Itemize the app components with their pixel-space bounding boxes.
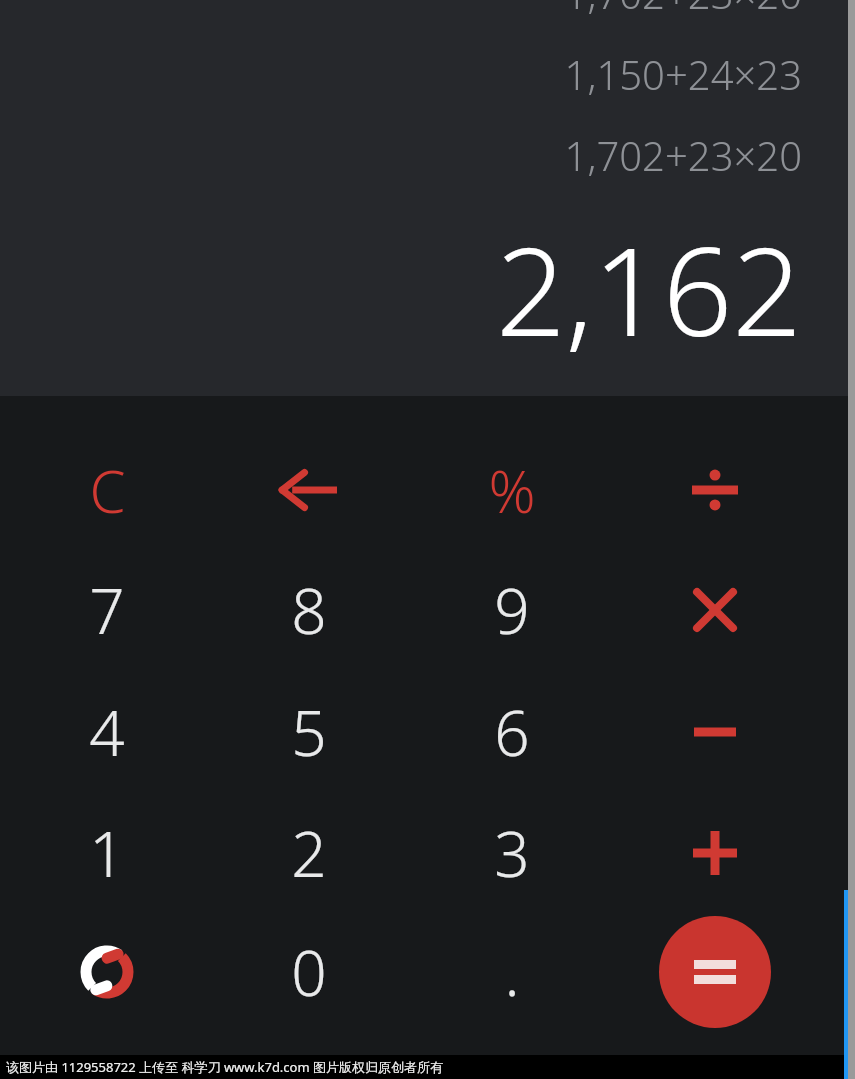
button[interactable]: 9: [411, 550, 613, 670]
staticText: 4: [89, 690, 125, 774]
button[interactable]: 6: [411, 672, 613, 792]
staticText: 9: [494, 568, 530, 652]
staticText: 6: [494, 690, 530, 774]
button[interactable]: Backspace: [208, 430, 410, 550]
staticText: 5: [291, 690, 327, 774]
button[interactable]: 1,702+23×20: [564, 128, 802, 182]
staticText: .: [504, 930, 520, 1014]
other: Equals: [614, 912, 816, 1032]
button[interactable]: 1: [6, 793, 208, 913]
staticText: %: [488, 451, 536, 530]
button[interactable]: Decimal point: [411, 912, 613, 1032]
button[interactable]: 3: [411, 793, 613, 913]
staticText: 该图片由 1129558722 上传至 科学刀 www.k7d.com 图片版权…: [6, 1058, 443, 1076]
staticText: 0: [291, 930, 327, 1014]
staticText: C: [89, 451, 126, 530]
button[interactable]: Minus: [614, 672, 816, 792]
button[interactable]: Multiply: [614, 550, 816, 670]
button[interactable]: Percent: [411, 430, 613, 550]
staticText: 7: [89, 568, 125, 652]
staticText: 8: [291, 568, 327, 652]
button[interactable]: 8: [208, 550, 410, 670]
button[interactable]: Plus: [614, 793, 816, 913]
staticText: 2: [291, 811, 327, 895]
staticText: 1: [89, 811, 125, 895]
button[interactable]: Clear: [6, 430, 208, 550]
button[interactable]: 2: [208, 793, 410, 913]
button[interactable]: 2,162: [495, 206, 802, 372]
button[interactable]: 1,150+24×23: [564, 47, 802, 101]
button[interactable]: 1,702+23×20: [564, 0, 802, 20]
button[interactable]: 5: [208, 672, 410, 792]
button[interactable]: [659, 916, 771, 1028]
button[interactable]: Divide: [614, 430, 816, 550]
button[interactable]: Toggle history: [6, 912, 208, 1032]
button[interactable]: 7: [6, 550, 208, 670]
button[interactable]: 4: [6, 672, 208, 792]
staticText: 3: [494, 811, 530, 895]
button[interactable]: 0: [208, 912, 410, 1032]
